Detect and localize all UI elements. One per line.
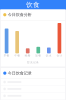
staticText: 今日饮食记录 <box>8 71 32 76</box>
staticText: 晚餐 <box>25 54 31 57</box>
staticText: 暂无记录 <box>27 61 39 64</box>
staticText: 今日饮食分析 <box>8 12 32 17</box>
staticText: 午餐 <box>14 54 20 57</box>
staticText: 加餐 <box>35 54 41 57</box>
staticText: 饮食 <box>26 1 40 9</box>
staticText: 早餐 <box>4 54 10 57</box>
staticText: 饮水 <box>46 54 52 57</box>
staticText: 合计 <box>56 54 62 57</box>
